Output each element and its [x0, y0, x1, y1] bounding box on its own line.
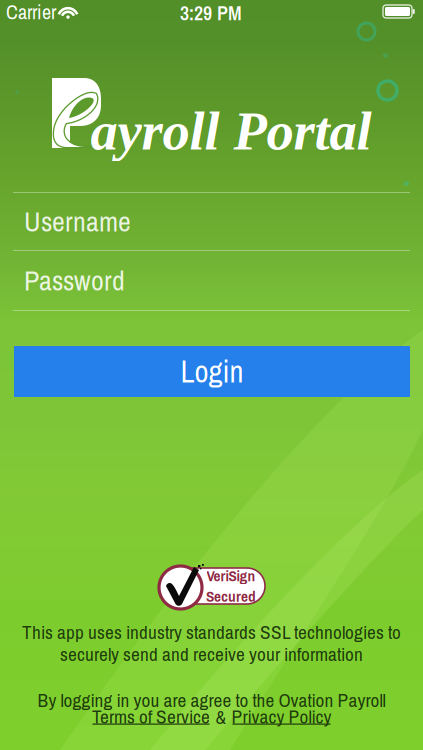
button[interactable]: Terms of Service: [92, 707, 209, 726]
button[interactable]: Username: [13, 193, 410, 250]
staticText: ayroll Portal: [90, 101, 371, 161]
staticText: VeriSign: [206, 565, 255, 586]
staticText: Login: [180, 351, 243, 392]
staticText: Privacy Policy: [231, 704, 331, 729]
staticText: 3:29 PM: [180, 0, 242, 26]
button[interactable]: Login: [14, 346, 410, 397]
staticText: Carrier: [6, 0, 56, 25]
staticText: By logging in you are agree to the Ovati…: [37, 687, 385, 713]
staticText: Terms of Service: [92, 704, 210, 729]
staticText: Secured: [206, 586, 256, 607]
staticText: Password: [24, 262, 125, 299]
staticText: Username: [24, 203, 131, 240]
button[interactable]: Privacy Policy: [232, 707, 330, 726]
staticText: securely send and receive your informati…: [60, 641, 363, 667]
button[interactable]: Password: [13, 251, 410, 310]
staticText: This app uses industry standards SSL tec…: [22, 619, 401, 645]
staticText: &: [215, 704, 226, 730]
